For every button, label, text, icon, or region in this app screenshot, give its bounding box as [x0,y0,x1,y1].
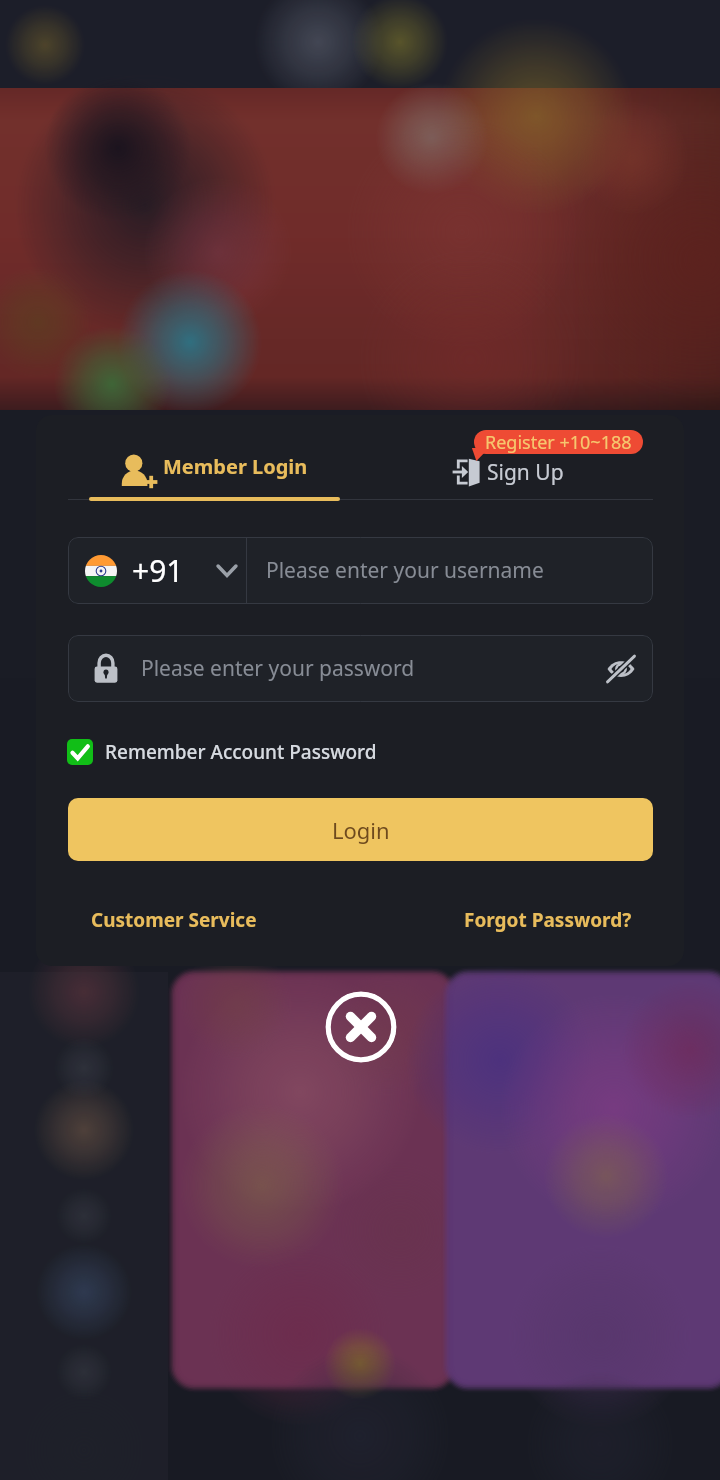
button[interactable]: Sign Up [445,450,605,494]
button[interactable]: Remember Account Password [67,735,377,769]
staticText: +91 [132,550,184,591]
button[interactable]: Register +10~188 [474,430,643,454]
staticText: Sign Up [487,458,564,487]
button[interactable]: Please enter your username [247,537,653,604]
staticText: Please enter your password [141,654,415,683]
button[interactable]: Member Login [89,443,340,501]
button[interactable]: Show password [589,635,653,702]
button[interactable]: Close [325,991,397,1063]
button[interactable] [68,537,246,604]
staticText: Forgot Password? [464,907,632,933]
staticText: Register +10~188 [485,430,632,454]
button[interactable]: Please enter your password [68,635,653,702]
staticText: Customer Service [91,907,257,933]
staticText: Member Login [163,453,308,480]
staticText: Please enter your username [266,556,544,585]
button[interactable]: Login [68,798,653,861]
staticText: Remember Account Password [105,739,377,765]
button[interactable]: Customer Service [91,900,261,940]
button[interactable]: Forgot Password? [464,900,639,940]
staticText: Login [332,815,390,845]
